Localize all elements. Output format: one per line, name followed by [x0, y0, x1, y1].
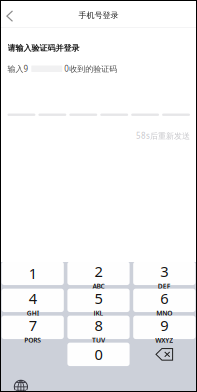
button[interactable]: 5 [67, 289, 130, 312]
staticText: GHI [27, 309, 39, 317]
staticText: 输入9 [7, 63, 28, 74]
staticText: 7 [29, 316, 37, 335]
button[interactable]: Delete [133, 343, 195, 366]
staticText: JKL [93, 309, 103, 317]
staticText: 58s后重新发送 [136, 130, 190, 141]
staticText: 请输入验证码并登录 [7, 43, 79, 53]
staticText: 4 [29, 289, 37, 308]
button[interactable]: 2 [67, 262, 130, 285]
staticText: 8 [94, 316, 102, 335]
staticText: 6 [160, 289, 168, 308]
staticText: PQRS [24, 336, 41, 344]
staticText: 0 [94, 345, 102, 364]
staticText: 2 [94, 262, 102, 281]
staticText: 1 [29, 264, 37, 283]
button[interactable]: 58s后重新发送 [136, 130, 190, 141]
staticText: ABC [92, 282, 104, 290]
button[interactable]: 7 [2, 316, 64, 339]
staticText: 0收到的验证码 [64, 63, 117, 74]
button[interactable]: 3 [133, 262, 195, 285]
staticText: 3 [160, 262, 168, 281]
staticText: MNO [156, 309, 172, 317]
button[interactable]: 4 [2, 289, 64, 312]
staticText: DEF [158, 282, 171, 290]
button[interactable]: Back [0, 0, 26, 27]
staticText: 5 [94, 289, 102, 308]
staticText: 手机号登录 [78, 10, 118, 20]
button[interactable]: 8 [67, 316, 130, 339]
button[interactable]: 0 [67, 343, 130, 366]
staticText: WXYZ [155, 336, 173, 344]
button[interactable]: 9 [133, 316, 195, 339]
staticText: TUV [92, 336, 105, 344]
button[interactable]: Next keyboard [2, 381, 195, 391]
button[interactable]: 6 [133, 289, 195, 312]
staticText: 9 [160, 316, 168, 335]
button[interactable]: 1 [2, 262, 64, 285]
